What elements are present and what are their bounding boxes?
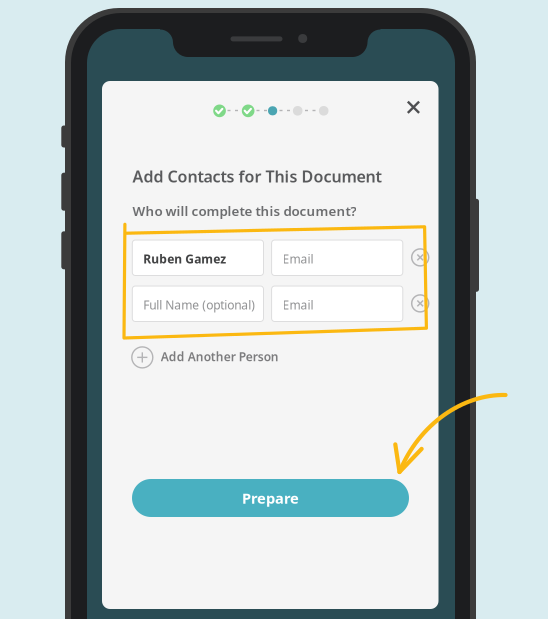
button[interactable]: Close [403,97,424,118]
staticText: Add Another Person [161,349,279,364]
staticText: Email [283,251,314,267]
button[interactable]: Remove contact [412,295,429,312]
staticText: Add Contacts for This Document [132,166,381,187]
button[interactable]: Remove contact [412,249,429,266]
staticText: Full Name (optional) [143,297,255,313]
button[interactable]: Prepare [132,479,409,517]
staticText: Prepare [242,488,299,508]
staticText: Ruben Gamez [143,251,226,267]
staticText: Who will complete this document? [132,202,356,220]
staticText: Email [283,297,314,313]
button[interactable]: Add Another Person [132,347,277,368]
